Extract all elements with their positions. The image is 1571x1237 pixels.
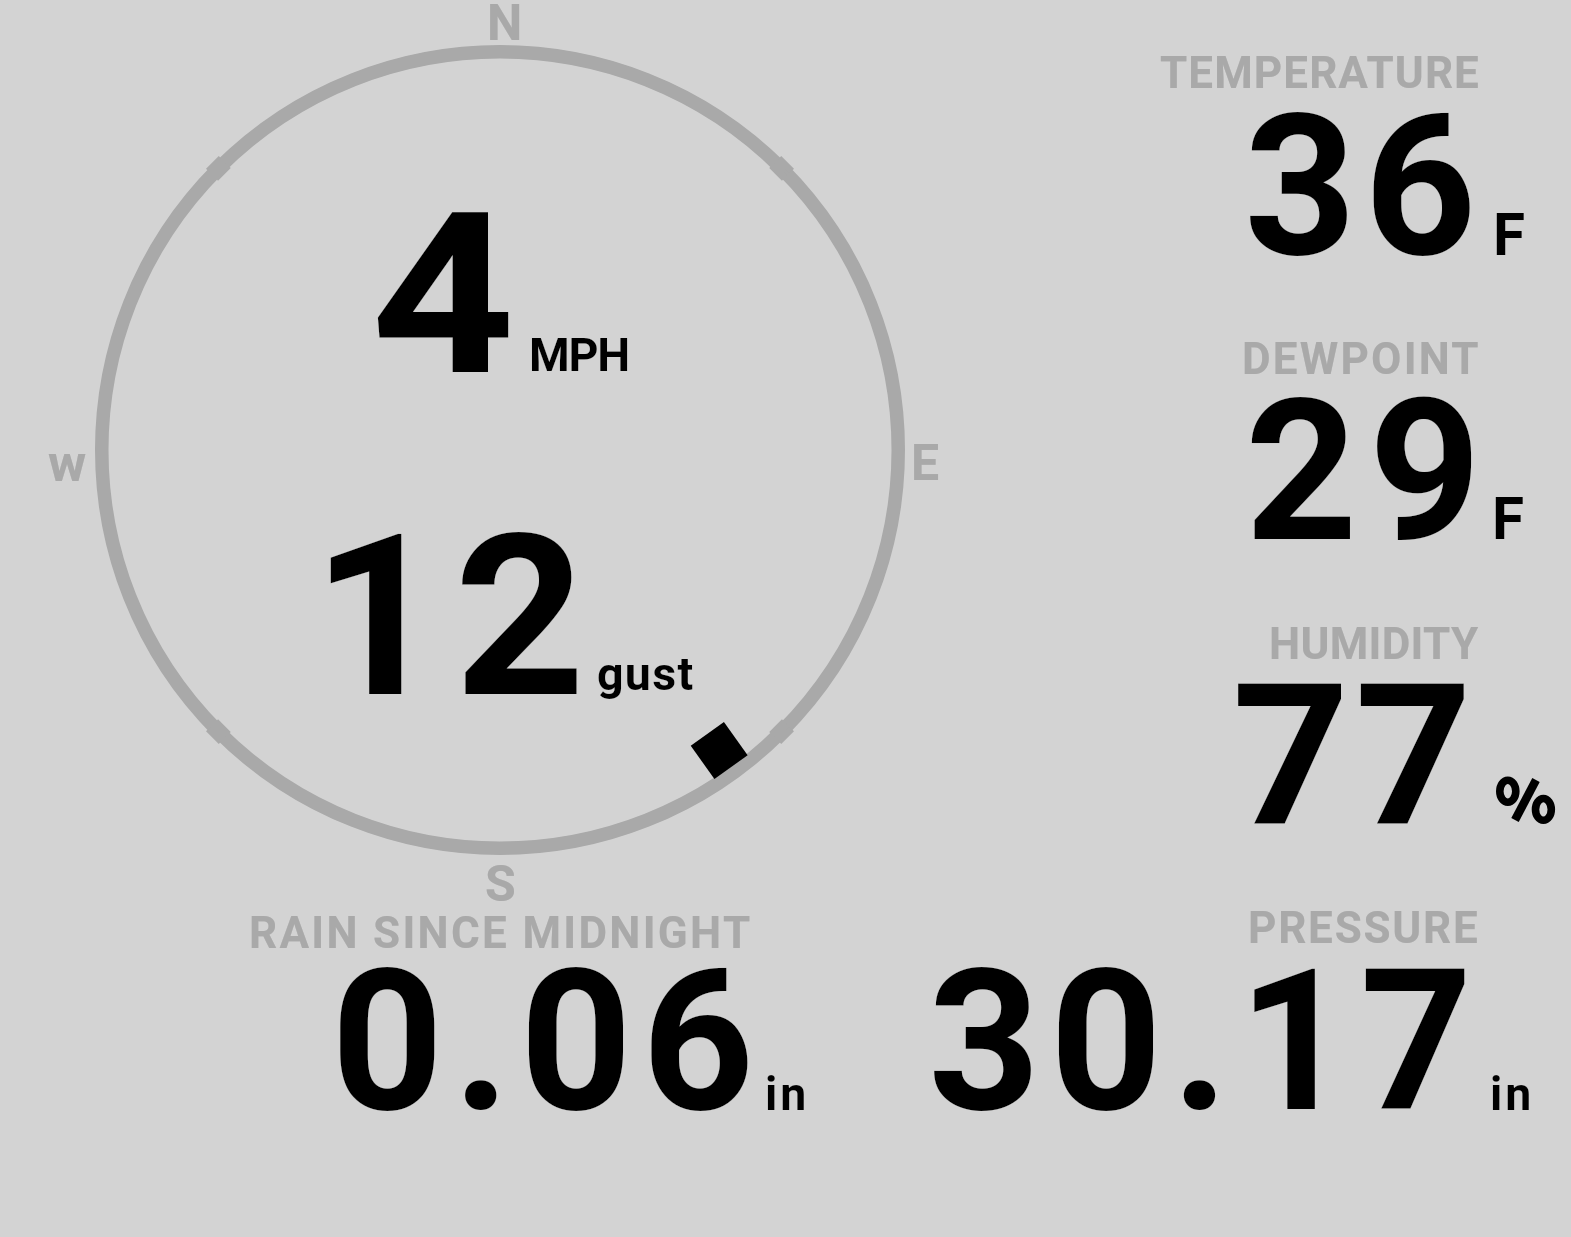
button[interactable]: Humidity 77 percent: [1100, 600, 1571, 870]
staticText: HUMIDITY: [1269, 618, 1479, 670]
staticText: F: [1492, 485, 1525, 554]
staticText: RAIN SINCE MIDNIGHT: [249, 907, 753, 959]
staticText: 29: [1245, 357, 1493, 587]
staticText: 0.06: [331, 927, 764, 1157]
staticText: N: [487, 0, 523, 53]
staticText: 77: [1232, 642, 1478, 872]
staticText: w: [48, 433, 87, 494]
staticText: E: [911, 434, 940, 493]
button[interactable]: Pressure 30.17 inches: [880, 885, 1571, 1135]
staticText: PRESSURE: [1248, 902, 1480, 954]
staticText: 30.17: [928, 927, 1482, 1157]
staticText: 4: [371, 164, 515, 427]
staticText: 36: [1244, 72, 1484, 302]
button[interactable]: Dewpoint 29 degrees Fahrenheit: [1100, 318, 1571, 588]
staticText: MPH: [529, 328, 630, 382]
button[interactable]: Temperature 36 degrees Fahrenheit: [1100, 30, 1571, 300]
button[interactable]: Wind: 4 miles per hour, gusting 12, from…: [80, 30, 920, 890]
staticText: in: [1490, 1067, 1535, 1121]
button[interactable]: Rain since midnight 0.06 inches: [200, 885, 830, 1135]
staticText: DEWPOINT: [1242, 333, 1481, 385]
staticText: 12: [312, 486, 598, 749]
staticText: F: [1493, 201, 1526, 270]
staticText: in: [765, 1067, 810, 1121]
staticText: TEMPERATURE: [1160, 47, 1480, 99]
staticText: gust: [597, 647, 695, 701]
staticText: S: [485, 855, 516, 914]
